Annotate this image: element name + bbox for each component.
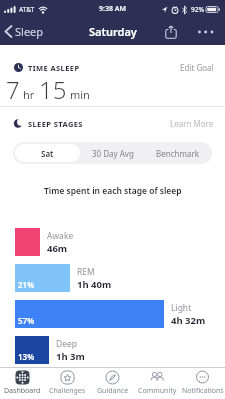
staticText: 15 bbox=[39, 73, 67, 106]
staticText: 92% bbox=[191, 5, 204, 14]
button[interactable] bbox=[165, 25, 177, 39]
button[interactable]: Edit Goal bbox=[180, 62, 214, 73]
staticText: Sat bbox=[41, 148, 54, 159]
button[interactable]: Guidance bbox=[90, 368, 135, 399]
button[interactable]: Sat bbox=[15, 144, 80, 162]
staticText: SLEEP STAGES bbox=[28, 119, 83, 129]
staticText: 7 bbox=[6, 73, 20, 106]
staticText: Light bbox=[171, 302, 192, 314]
staticText: Notifications bbox=[182, 386, 224, 396]
staticText: Dashboard bbox=[4, 386, 41, 396]
button[interactable]: Community bbox=[135, 368, 180, 399]
staticText: Benchmark bbox=[156, 148, 199, 159]
button[interactable]: 30 Day Avg bbox=[80, 144, 145, 162]
staticText: 57% bbox=[18, 315, 35, 326]
staticText: 1h 40m bbox=[77, 278, 112, 291]
staticText: TIME ASLEEP bbox=[28, 63, 80, 73]
staticText: Awake bbox=[47, 230, 74, 242]
staticText: 30 Day Avg bbox=[92, 148, 134, 159]
staticText: min bbox=[70, 87, 90, 102]
button[interactable]: Benchmark bbox=[145, 144, 210, 162]
button[interactable]: Notifications bbox=[180, 368, 225, 399]
staticText: REM bbox=[77, 266, 95, 278]
staticText: 46m bbox=[47, 242, 68, 255]
staticText: Time spent in each stage of sleep bbox=[44, 185, 182, 197]
button[interactable]: Dashboard bbox=[0, 368, 45, 399]
staticText: Guidance bbox=[97, 386, 129, 396]
staticText: 9:38 AM bbox=[99, 4, 126, 14]
staticText: Edit Goal bbox=[180, 62, 214, 73]
button[interactable]: Sleep bbox=[4, 24, 44, 39]
button[interactable] bbox=[197, 25, 215, 39]
staticText: Deep bbox=[56, 338, 78, 350]
staticText: 4h 32m bbox=[171, 314, 206, 327]
staticText: 1h 3m bbox=[56, 350, 85, 363]
button[interactable]: Learn More bbox=[170, 118, 214, 129]
staticText: AT&T bbox=[19, 5, 35, 14]
button[interactable]: Challenges bbox=[45, 368, 90, 399]
staticText: Sleep bbox=[15, 24, 44, 39]
staticText: Community bbox=[138, 386, 177, 396]
staticText: Challenges bbox=[49, 386, 86, 396]
staticText: 21% bbox=[18, 279, 35, 290]
staticText: hr bbox=[23, 87, 35, 102]
staticText: Saturday bbox=[89, 24, 137, 39]
staticText: Learn More bbox=[170, 118, 214, 129]
staticText: 13% bbox=[18, 351, 35, 362]
